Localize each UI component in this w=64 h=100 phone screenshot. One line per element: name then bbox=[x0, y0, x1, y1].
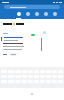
button[interactable] bbox=[9, 53, 17, 56]
button[interactable]: Tab 3 bbox=[33, 10, 40, 19]
button[interactable]: Tab 5 bbox=[51, 10, 58, 19]
button[interactable]: Tab 2 bbox=[24, 10, 31, 19]
button[interactable]: Search bbox=[4, 5, 60, 9]
button[interactable]: Tab 1 bbox=[15, 10, 22, 19]
button[interactable]: Tab 4 bbox=[42, 10, 49, 19]
